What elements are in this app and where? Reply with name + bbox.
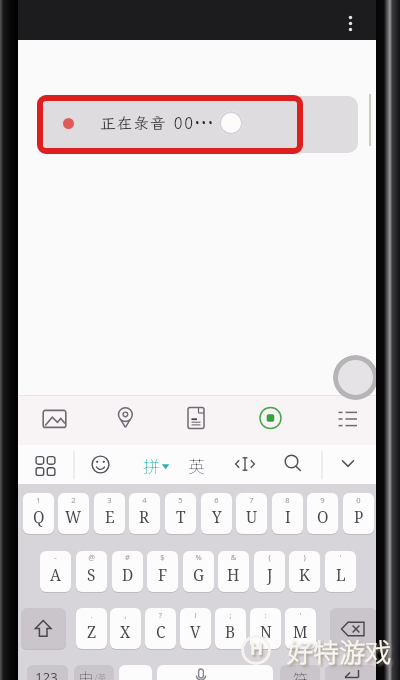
button[interactable] (327, 399, 369, 441)
button[interactable] (175, 399, 217, 441)
button[interactable] (35, 399, 77, 441)
staticText: X (120, 621, 131, 642)
button[interactable] (329, 448, 367, 482)
staticText: V (190, 621, 201, 642)
staticText: 好特游戏 (287, 632, 392, 670)
button[interactable]: R (129, 493, 160, 534)
staticText: Z (87, 621, 97, 642)
button[interactable] (119, 665, 152, 680)
staticText: 7 (236, 495, 267, 506)
staticText: N (260, 621, 272, 642)
button[interactable] (105, 399, 147, 441)
staticText: Q (33, 506, 45, 527)
button[interactable] (82, 448, 120, 482)
button[interactable]: 拼 (143, 453, 160, 478)
staticText: P (354, 506, 364, 527)
staticText: & (218, 552, 249, 563)
button[interactable]: C (145, 608, 176, 649)
staticText: $ (147, 552, 178, 563)
button[interactable] (26, 448, 64, 482)
staticText: T (176, 506, 186, 527)
button[interactable] (43, 96, 358, 153)
button[interactable]: W (58, 493, 89, 534)
button[interactable]: L (325, 551, 356, 592)
staticText: L (336, 564, 346, 585)
staticText: ; (215, 610, 246, 621)
button[interactable]: N (250, 608, 281, 649)
button[interactable] (250, 399, 292, 441)
staticText: 4 (129, 495, 160, 506)
button[interactable] (333, 355, 378, 400)
button[interactable]: H (218, 551, 249, 592)
staticText: 5 (165, 495, 196, 506)
button[interactable] (226, 448, 264, 482)
staticText: J (267, 564, 273, 585)
button[interactable]: J (254, 551, 285, 592)
button[interactable]: X (110, 608, 141, 649)
staticText: 0 (343, 495, 374, 506)
button[interactable]: Q (23, 493, 54, 534)
staticText: C (156, 621, 166, 642)
button[interactable]: 英 (188, 453, 205, 478)
staticText: H (250, 637, 264, 660)
staticText: 符 (293, 668, 309, 680)
button[interactable] (27, 665, 68, 680)
button[interactable]: Z (76, 608, 107, 649)
staticText: @ (76, 552, 107, 563)
staticText: U (246, 506, 258, 527)
button[interactable]: O (307, 493, 338, 534)
button[interactable]: F (147, 551, 178, 592)
staticText: S (87, 564, 96, 585)
button[interactable]: S (76, 551, 107, 592)
button[interactable]: D (112, 551, 143, 592)
staticText: 123 (33, 668, 60, 680)
staticText: D (122, 564, 134, 585)
staticText: ! (180, 610, 211, 621)
button[interactable] (74, 665, 114, 680)
button[interactable]: K (289, 551, 320, 592)
staticText: W (65, 506, 82, 527)
staticText: 8 (272, 495, 303, 506)
staticText: 9 (307, 495, 338, 506)
button[interactable] (274, 448, 312, 482)
staticText: ? (145, 610, 176, 621)
staticText: Y (212, 506, 222, 527)
staticText: ( (254, 552, 285, 563)
staticText: - (40, 552, 71, 563)
button[interactable]: T (165, 493, 196, 534)
button[interactable] (157, 665, 273, 680)
staticText: A (50, 564, 61, 585)
button[interactable]: I (272, 493, 303, 534)
staticText: 正在录音 00··· (100, 113, 215, 133)
staticText: R (139, 506, 150, 527)
button[interactable] (330, 608, 377, 649)
staticText: # (112, 552, 143, 563)
button[interactable]: E (94, 493, 125, 534)
button[interactable]: U (236, 493, 267, 534)
button[interactable]: V (180, 608, 211, 649)
staticText: M (293, 621, 308, 642)
button[interactable]: G (183, 551, 214, 592)
staticText: I (285, 506, 291, 527)
button[interactable]: P (343, 493, 374, 534)
staticText: 3 (94, 495, 125, 506)
staticText: 2 (58, 495, 89, 506)
button[interactable]: Y (201, 493, 232, 534)
staticText: G (193, 564, 205, 585)
staticText: O (317, 506, 329, 527)
button[interactable]: A (40, 551, 71, 592)
staticText: K (299, 564, 310, 585)
staticText: , (110, 610, 141, 621)
staticText: . (76, 610, 107, 621)
button[interactable]: M (285, 608, 316, 649)
staticText: ' (325, 552, 356, 563)
staticText: /英 (94, 671, 107, 680)
button[interactable] (280, 665, 320, 680)
button[interactable] (325, 665, 377, 680)
staticText: 中 (79, 667, 93, 680)
staticText: H (227, 564, 240, 585)
staticText: ' (285, 610, 316, 621)
button[interactable] (21, 608, 66, 649)
button[interactable]: B (215, 608, 246, 649)
staticText: B (225, 621, 236, 642)
